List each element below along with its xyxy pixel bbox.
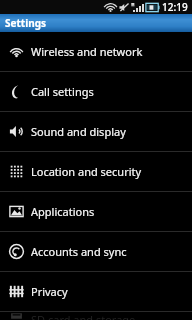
button[interactable]: Sound and display <box>0 112 192 151</box>
staticText: 12:19 <box>162 0 188 14</box>
staticText: Call settings <box>31 84 94 99</box>
button[interactable]: Wireless and network <box>0 32 192 71</box>
button[interactable]: SD card and storage <box>0 312 192 320</box>
staticText: Applications <box>31 204 95 219</box>
staticText: Sound and display <box>31 124 126 139</box>
staticText: Wireless and network <box>31 44 143 59</box>
staticText: SD card and storage <box>31 312 136 320</box>
staticText: Accounts and sync <box>31 244 127 259</box>
button[interactable]: Applications <box>0 192 192 231</box>
button[interactable]: Privacy <box>0 272 192 311</box>
button[interactable]: Call settings <box>0 72 192 111</box>
staticText: Privacy <box>31 284 68 299</box>
staticText: Location and security <box>31 164 142 179</box>
staticText: Settings <box>5 16 46 30</box>
button[interactable]: Location and security <box>0 152 192 191</box>
button[interactable]: Accounts and sync <box>0 232 192 271</box>
